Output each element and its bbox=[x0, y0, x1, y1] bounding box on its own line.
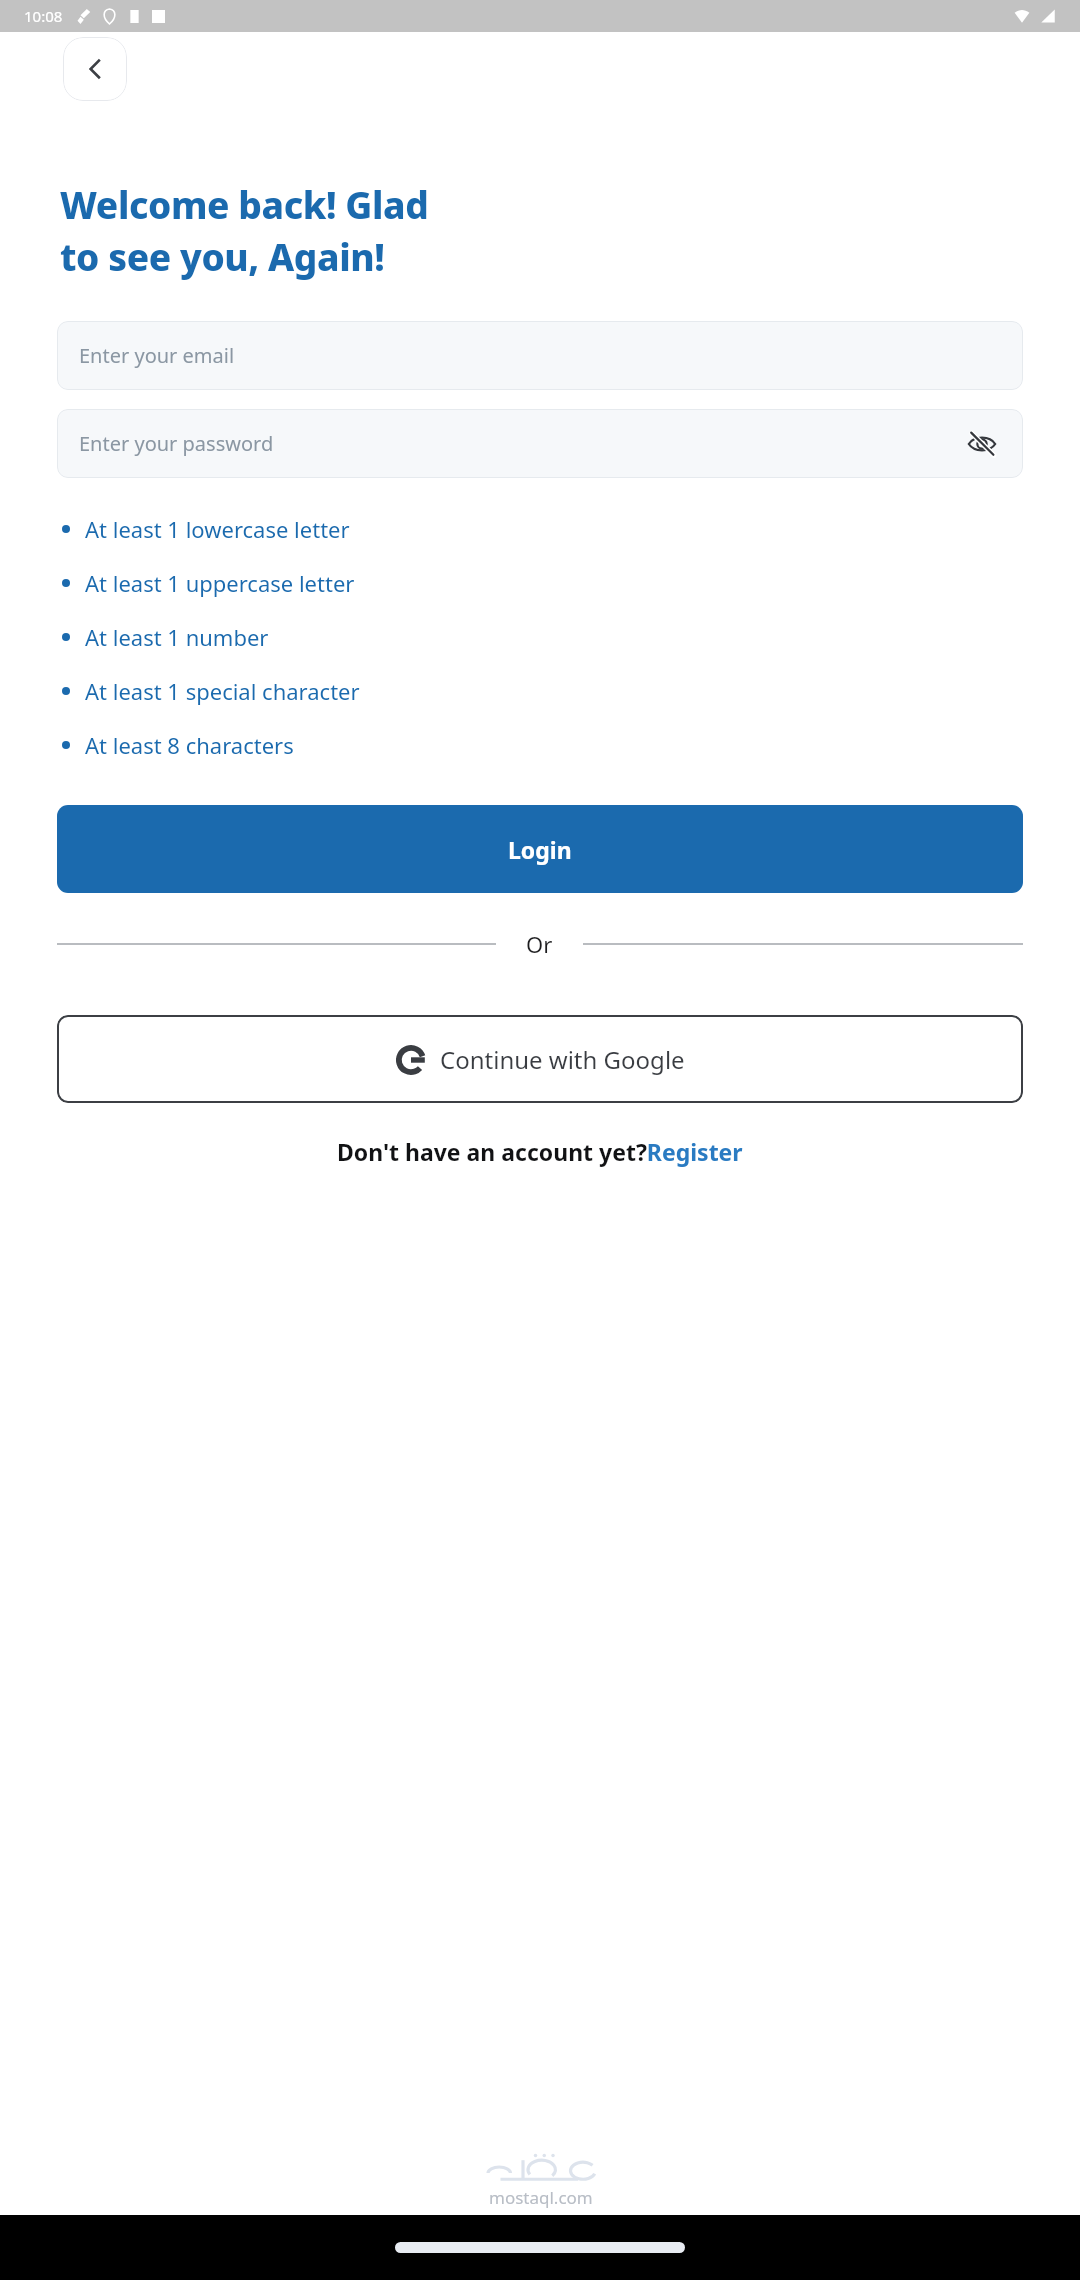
button[interactable]: Show password bbox=[961, 423, 1003, 465]
button[interactable]: Back bbox=[63, 37, 127, 101]
staticText: At least 1 lowercase letter bbox=[85, 514, 350, 544]
staticText: At least 1 uppercase letter bbox=[85, 568, 355, 598]
staticText: Or bbox=[526, 929, 553, 959]
staticText: At least 1 number bbox=[85, 622, 269, 652]
button[interactable]: Login bbox=[57, 805, 1023, 893]
button[interactable]: Continue with Google bbox=[57, 1015, 1023, 1103]
staticText: At least 1 special character bbox=[85, 676, 360, 706]
button[interactable]: Enter your email bbox=[57, 321, 1023, 390]
staticText: Don't have an account yet?Register bbox=[337, 1136, 743, 1167]
staticText: mostaql.com bbox=[489, 2186, 593, 2209]
button[interactable]: Don't have an account yet?Register bbox=[337, 1136, 743, 1167]
staticText: Login bbox=[508, 834, 572, 865]
staticText: Welcome back! Glad to see you, Again! bbox=[60, 179, 429, 282]
staticText: Enter your email bbox=[79, 342, 235, 369]
staticText: 10:08 bbox=[24, 6, 63, 26]
staticText: Continue with Google bbox=[440, 1043, 685, 1076]
staticText: Enter your password bbox=[79, 430, 274, 457]
staticText: At least 8 characters bbox=[85, 730, 294, 760]
button[interactable]: Enter your password bbox=[57, 409, 1023, 478]
